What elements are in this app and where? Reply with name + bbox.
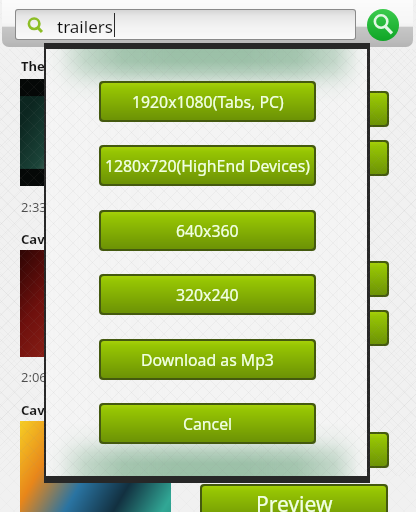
- staticText: Cave Trailer HD: [21, 230, 121, 248]
- button[interactable]: trailers: [16, 10, 355, 39]
- button[interactable]: 640x360: [101, 212, 314, 249]
- staticText: trailers: [57, 15, 113, 38]
- other: Download: [350, 261, 389, 297]
- button[interactable]: [352, 312, 387, 344]
- staticText: 2:06: [21, 368, 47, 386]
- button[interactable]: Download as Mp3: [101, 341, 314, 378]
- button[interactable]: Cancel: [101, 405, 314, 442]
- button[interactable]: [352, 263, 387, 295]
- staticText: Preview: [256, 490, 333, 512]
- other: Download: [350, 432, 389, 468]
- staticText: The Hobbit - Official Trailer: [21, 57, 195, 75]
- button[interactable]: 1280x720(HighEnd Devices): [101, 147, 314, 184]
- staticText: Cave Trailer 2: [21, 401, 109, 419]
- staticText: 2:33: [21, 198, 47, 216]
- button[interactable]: Search: [367, 9, 399, 41]
- staticText: 1920x1080(Tabs, PC): [132, 91, 284, 113]
- staticText: 1280x720(HighEnd Devices): [105, 155, 310, 177]
- staticText: Download as Mp3: [141, 349, 274, 371]
- button[interactable]: [352, 93, 387, 125]
- button[interactable]: 320x240: [101, 276, 314, 313]
- button[interactable]: [352, 434, 387, 466]
- other: Download: [350, 91, 389, 127]
- button[interactable]: 1920x1080(Tabs, PC): [101, 83, 314, 120]
- other: Download: [350, 140, 389, 176]
- button[interactable]: [352, 142, 387, 174]
- staticText: Cancel: [183, 413, 233, 435]
- staticText: 640x360: [176, 220, 239, 242]
- other: Download: [350, 310, 389, 346]
- staticText: 320x240: [176, 284, 239, 306]
- button[interactable]: Preview: [202, 486, 386, 512]
